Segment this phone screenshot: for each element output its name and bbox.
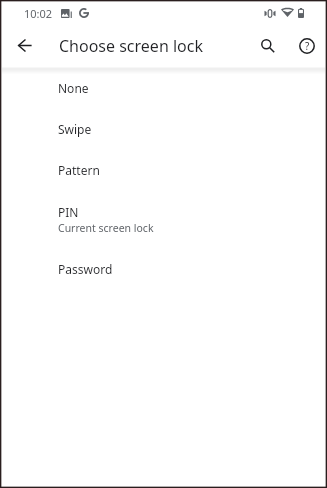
button[interactable]: Swipe: [2, 108, 325, 149]
staticText: ?: [305, 39, 310, 53]
staticText: 10:02: [24, 6, 53, 21]
button[interactable]: PIN: [2, 191, 325, 246]
staticText: Pattern: [58, 162, 100, 178]
button[interactable]: None: [2, 67, 325, 108]
staticText: Choose screen lock: [59, 35, 203, 57]
button[interactable]: Password: [2, 248, 325, 289]
button[interactable]: Search: [254, 32, 282, 60]
staticText: Password: [58, 261, 113, 277]
button[interactable]: Help: [292, 31, 321, 60]
staticText: PIN: [58, 204, 79, 220]
button[interactable]: Navigate up: [11, 32, 39, 60]
staticText: None: [58, 80, 89, 96]
button[interactable]: Pattern: [2, 149, 325, 190]
staticText: Swipe: [58, 121, 92, 137]
staticText: Current screen lock: [58, 221, 154, 235]
